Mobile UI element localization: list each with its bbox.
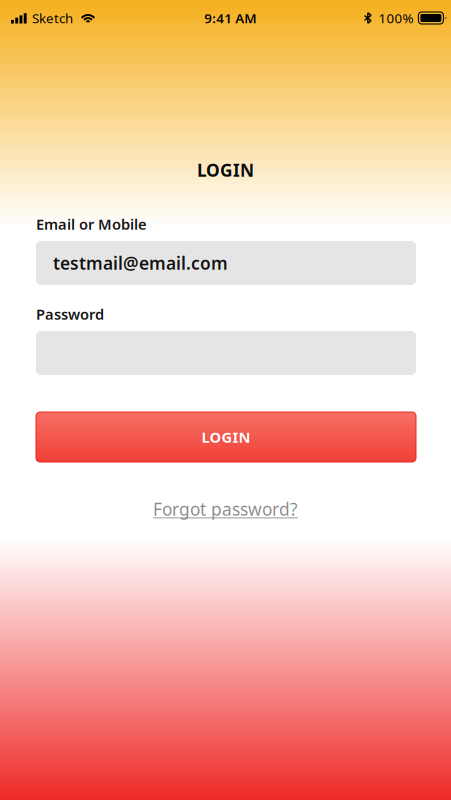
staticText: Password — [36, 304, 104, 324]
staticText: Forgot password? — [153, 497, 298, 520]
button[interactable]: Forgot password? — [0, 498, 451, 520]
button[interactable]: testmail@email.com — [36, 241, 416, 285]
staticText: LOGIN — [201, 427, 250, 447]
staticText: 100% — [378, 9, 413, 27]
staticText: 9:41 AM — [204, 9, 256, 27]
staticText: testmail@email.com — [53, 251, 228, 274]
staticText: LOGIN — [197, 158, 254, 181]
staticText: Email or Mobile — [36, 214, 147, 234]
staticText: Sketch — [32, 9, 73, 27]
button[interactable]: LOGIN — [36, 412, 416, 462]
